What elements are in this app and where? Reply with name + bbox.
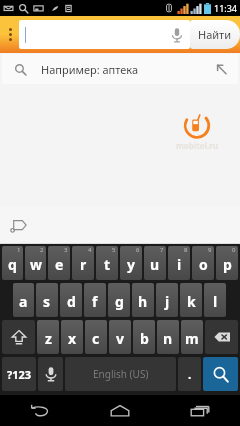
staticText: .: [188, 366, 192, 382]
button[interactable]: 8: [168, 246, 190, 280]
staticText: s: [43, 292, 51, 311]
button[interactable]: 3: [48, 246, 70, 280]
button[interactable]: m: [181, 320, 203, 354]
button[interactable]: v: [109, 320, 131, 354]
button[interactable]: Keyboard settings: [6, 214, 30, 238]
staticText: Например: аптека: [41, 62, 139, 77]
button[interactable]: 0: [216, 246, 238, 280]
button[interactable]: f: [84, 283, 106, 317]
staticText: f: [92, 292, 98, 311]
staticText: m: [185, 329, 199, 348]
button[interactable]: c: [85, 320, 107, 354]
button[interactable]: Search: [203, 357, 238, 391]
button[interactable]: English (US): [65, 357, 176, 391]
staticText: u: [150, 255, 160, 274]
button[interactable]: Например: аптека: [2, 54, 238, 84]
staticText: ?123: [7, 367, 32, 382]
button[interactable]: Delete: [205, 320, 238, 354]
button[interactable]: d: [60, 283, 82, 317]
staticText: e: [55, 255, 64, 274]
staticText: b: [140, 329, 149, 348]
staticText: 11:34: [214, 2, 238, 14]
staticText: 3: [64, 246, 68, 254]
staticText: v: [116, 329, 124, 348]
staticText: 8: [184, 246, 188, 254]
other: Insert suggestion: [215, 63, 228, 76]
staticText: 1: [17, 246, 21, 254]
staticText: 5: [112, 246, 116, 254]
button[interactable]: Voice input: [38, 357, 63, 391]
staticText: n: [163, 329, 173, 348]
button[interactable]: Shift: [2, 320, 35, 354]
staticText: 7: [160, 246, 164, 254]
button[interactable]: .: [178, 357, 201, 391]
staticText: h: [138, 292, 148, 311]
staticText: mobitel.ru: [176, 140, 218, 151]
button[interactable]: 2: [25, 246, 46, 280]
staticText: c: [92, 329, 100, 348]
staticText: q: [8, 255, 17, 274]
button[interactable]: b: [133, 320, 155, 354]
button[interactable]: 4: [72, 246, 94, 280]
staticText: y: [127, 255, 135, 274]
button[interactable]: Back: [0, 395, 80, 426]
staticText: English (US): [93, 367, 149, 381]
staticText: g: [115, 292, 124, 311]
button[interactable]: 5: [96, 246, 118, 280]
button[interactable]: Recent apps: [160, 395, 240, 426]
button[interactable]: a: [13, 283, 34, 317]
staticText: 2: [40, 246, 44, 254]
button[interactable]: ?123: [2, 357, 36, 391]
button[interactable]: z: [37, 320, 59, 354]
staticText: 9: [208, 246, 212, 254]
staticText: 6: [136, 246, 140, 254]
staticText: j: [165, 292, 170, 311]
staticText: t: [104, 255, 111, 274]
button[interactable]: Найти: [190, 20, 240, 49]
staticText: w: [30, 255, 42, 274]
staticText: x: [68, 329, 77, 348]
button[interactable]: s: [36, 283, 58, 317]
staticText: p: [223, 255, 232, 274]
button[interactable]: h: [132, 283, 154, 317]
button[interactable]: x: [61, 320, 83, 354]
button[interactable]: l: [204, 283, 226, 317]
staticText: Найти: [198, 27, 232, 42]
button[interactable]: More options: [3, 20, 17, 49]
staticText: a: [19, 292, 28, 311]
staticText: d: [67, 292, 76, 311]
staticText: 4: [88, 246, 92, 254]
other: Voice search: [169, 26, 185, 44]
staticText: 0: [232, 246, 236, 254]
button[interactable]: j: [156, 283, 178, 317]
staticText: o: [199, 255, 208, 274]
staticText: i: [177, 255, 182, 274]
staticText: z: [45, 329, 52, 348]
staticText: r: [80, 255, 87, 274]
button[interactable]: g: [108, 283, 130, 317]
staticText: k: [187, 292, 196, 311]
button[interactable]: 9: [192, 246, 214, 280]
button[interactable]: Home: [80, 395, 160, 426]
button[interactable]: 1: [2, 246, 23, 280]
button[interactable]: Voice search: [19, 20, 190, 49]
button[interactable]: 7: [144, 246, 166, 280]
staticText: l: [213, 292, 218, 311]
button[interactable]: n: [157, 320, 179, 354]
button[interactable]: k: [180, 283, 202, 317]
button[interactable]: 6: [120, 246, 142, 280]
